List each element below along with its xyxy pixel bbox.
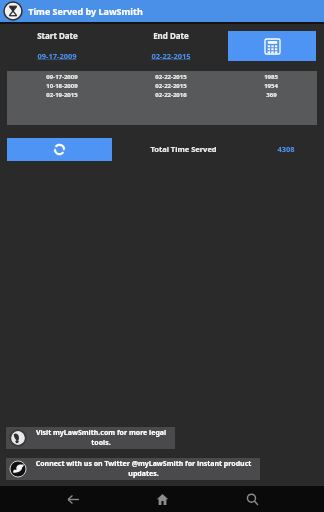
staticText: Visit myLawSmith.com for more legal tool… — [31, 428, 171, 448]
button[interactable]: Visit myLawSmith.com — [6, 427, 175, 449]
button[interactable]: Back — [56, 486, 90, 512]
button[interactable]: Home — [145, 486, 179, 512]
button[interactable]: 02-19-2015 — [7, 90, 317, 99]
button[interactable]: Calculate — [228, 31, 316, 61]
staticText: 369 — [266, 91, 277, 99]
staticText: End Date — [153, 30, 189, 41]
button[interactable]: 09-17-2009 — [31, 50, 83, 62]
button[interactable]: Search — [235, 486, 269, 512]
staticText: 02-22-2015 — [155, 82, 187, 90]
button[interactable]: Twitter — [6, 458, 260, 480]
staticText: Time Served by LawSmith — [28, 5, 143, 17]
staticText: 1985 — [264, 73, 278, 81]
staticText: 4308 — [277, 144, 295, 154]
staticText: 02-22-2015 — [155, 73, 187, 81]
button[interactable]: 09-17-2009 — [7, 72, 317, 81]
staticText: 09-17-2009 — [46, 73, 78, 81]
staticText: 02-19-2015 — [46, 91, 78, 99]
staticText: 02-22-2015 — [151, 51, 191, 61]
staticText: 02-22-2016 — [155, 91, 187, 99]
button[interactable]: 02-22-2015 — [145, 50, 197, 62]
button[interactable]: 10-18-2009 — [7, 81, 317, 90]
staticText: Connect with us on Twitter @myLawSmith f… — [31, 459, 256, 479]
staticText: Total Time Served — [150, 144, 217, 154]
staticText: 1954 — [264, 82, 278, 90]
button[interactable]: Reset — [7, 138, 112, 161]
staticText: 10-18-2009 — [46, 82, 78, 90]
staticText: 09-17-2009 — [37, 51, 77, 61]
staticText: Start Date — [37, 30, 78, 41]
